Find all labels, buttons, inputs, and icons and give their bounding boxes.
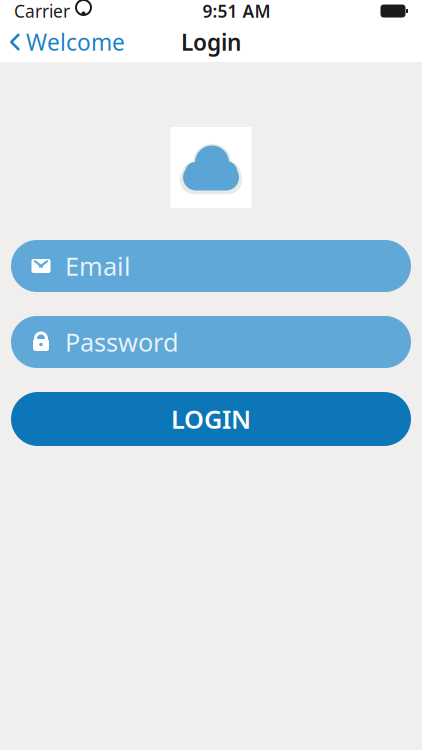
staticText: Email: [65, 249, 131, 283]
button[interactable]: Email: [11, 240, 411, 292]
staticText: Login: [181, 27, 241, 57]
button[interactable]: Password: [11, 316, 411, 368]
button[interactable]: Welcome: [0, 19, 125, 65]
staticText: Carrier: [14, 0, 70, 22]
staticText: Password: [65, 325, 179, 359]
staticText: Welcome: [26, 27, 125, 57]
staticText: LOGIN: [171, 402, 251, 436]
staticText: 9:51 AM: [202, 0, 270, 22]
button[interactable]: LOGIN: [11, 392, 411, 446]
